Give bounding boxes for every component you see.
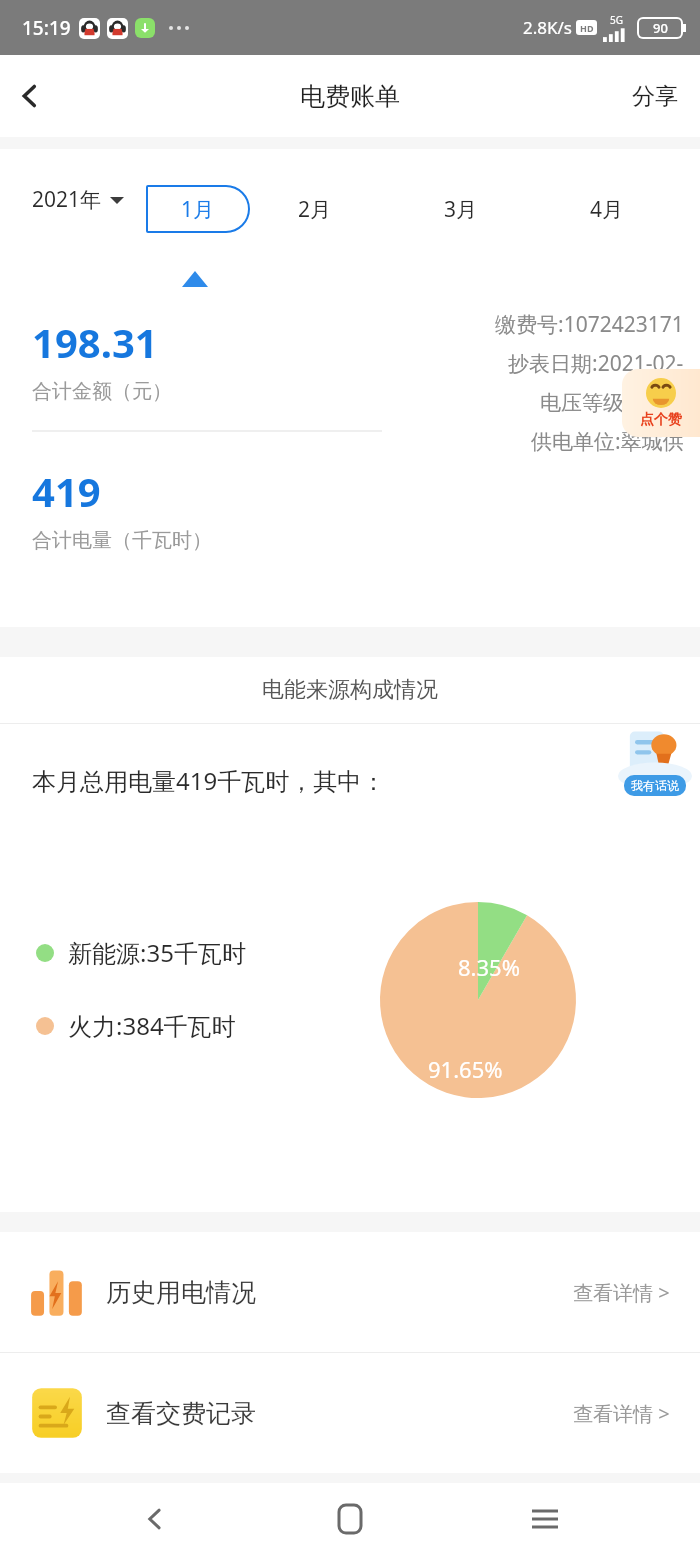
staticText: 2月 — [298, 195, 332, 224]
staticText: 198.31 — [32, 315, 158, 369]
staticText: 2021年 — [32, 185, 102, 214]
staticText: 2.8K/s — [523, 16, 572, 39]
staticText: 我有话说 — [631, 778, 679, 793]
staticText: 419 — [32, 464, 101, 518]
button[interactable]: 2月 — [292, 185, 338, 233]
button[interactable]: 点个赞 — [622, 369, 700, 437]
staticText: 查看详情 > — [573, 1400, 670, 1427]
staticText: 8.35% — [458, 952, 520, 982]
button[interactable]: 主页 — [310, 1483, 390, 1555]
staticText: 新能源:35千瓦时 — [68, 936, 246, 969]
button[interactable]: 返回 — [0, 66, 60, 126]
staticText: 缴费号:1072423171 — [495, 310, 684, 339]
staticText: 合计电量（千瓦时） — [32, 528, 212, 553]
button[interactable]: 菜单 — [505, 1483, 585, 1555]
button[interactable]: 3月 — [438, 185, 484, 233]
staticText: 电能来源构成情况 — [262, 676, 438, 704]
staticText: 分享 — [632, 82, 678, 111]
staticText: 查看详情 > — [573, 1279, 670, 1306]
staticText: 点个赞 — [640, 411, 682, 429]
staticText: 本月总用电量419千瓦时，其中： — [32, 764, 386, 797]
button[interactable]: 历史用电情况 — [0, 1232, 700, 1352]
staticText: 供电单位:翠城供 — [531, 427, 684, 456]
staticText: 电压等级:交流1 — [540, 388, 684, 417]
button[interactable]: 查看交费记录 — [0, 1353, 700, 1473]
staticText: 查看交费记录 — [106, 1398, 256, 1429]
staticText: 抄表日期:2021-02- — [508, 349, 684, 378]
staticText: 3月 — [444, 195, 478, 224]
button[interactable]: 我有话说 — [618, 730, 692, 802]
button[interactable]: 分享 — [610, 68, 700, 125]
staticText: 历史用电情况 — [106, 1277, 256, 1308]
staticText: 91.65% — [428, 1054, 503, 1084]
button[interactable]: 返回 — [115, 1483, 195, 1555]
staticText: 5G — [610, 13, 623, 27]
button[interactable]: 2021年 — [32, 185, 124, 214]
staticText: 合计金额（元） — [32, 379, 172, 404]
staticText: 15:19 — [22, 15, 71, 41]
staticText: 1月 — [181, 195, 215, 224]
staticText: 电费账单 — [300, 81, 400, 112]
button[interactable]: 4月 — [584, 185, 630, 233]
staticText: HD — [580, 22, 594, 34]
staticText: 火力:384千瓦时 — [68, 1009, 236, 1042]
staticText: 90 — [653, 19, 668, 37]
staticText: 4月 — [590, 195, 624, 224]
button[interactable]: 1月 — [146, 185, 250, 233]
